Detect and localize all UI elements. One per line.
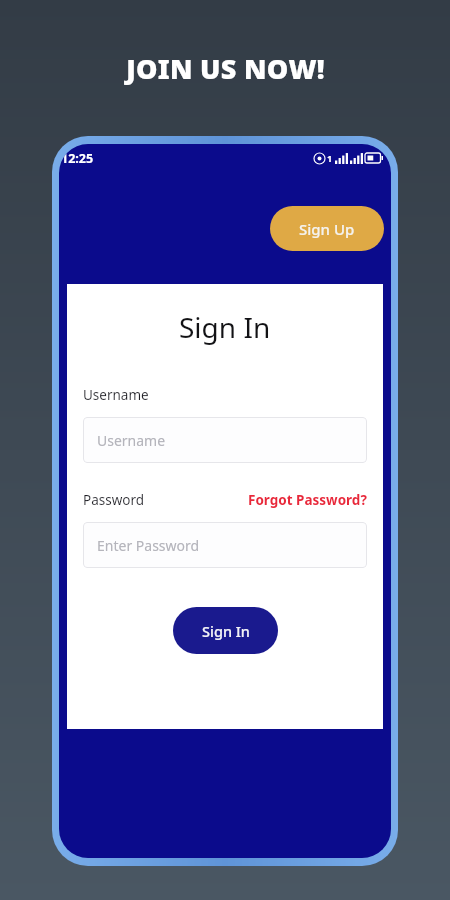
button[interactable]: Enter Password xyxy=(83,522,367,568)
staticText: Username xyxy=(97,431,166,450)
staticText: Forgot Password? xyxy=(248,491,367,509)
staticText: JOIN US NOW! xyxy=(126,50,325,87)
staticText: 1 xyxy=(327,152,333,164)
staticText: Sign In xyxy=(179,308,271,346)
staticText: Sign Up xyxy=(299,219,355,239)
button[interactable]: Forgot Password? xyxy=(248,491,367,509)
staticText: 12:25 xyxy=(61,150,94,167)
staticText: Enter Password xyxy=(97,536,200,555)
button[interactable]: Sign Up xyxy=(270,206,384,251)
button[interactable]: Username xyxy=(83,417,367,463)
staticText: Password xyxy=(83,491,145,509)
staticText: Username xyxy=(83,386,149,404)
staticText: Sign In xyxy=(202,621,250,641)
button[interactable]: Sign In xyxy=(173,607,278,654)
